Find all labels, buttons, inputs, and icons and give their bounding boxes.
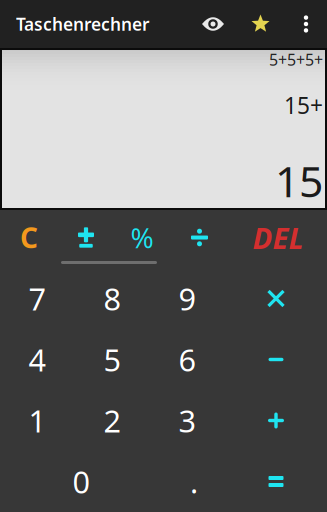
button[interactable]: 3: [150, 390, 225, 451]
staticText: 7: [28, 278, 46, 319]
button[interactable]: Equals: [225, 451, 327, 512]
button[interactable]: More options: [285, 0, 327, 48]
staticText: 5: [103, 339, 121, 380]
staticText: 0: [72, 461, 90, 502]
button[interactable]: Plus: [225, 390, 327, 451]
staticText: 2: [103, 400, 121, 441]
button[interactable]: Plus minus: [58, 210, 114, 265]
button[interactable]: .: [163, 451, 225, 512]
staticText: 6: [178, 339, 196, 380]
button[interactable]: 2: [75, 390, 150, 451]
button[interactable]: Preview: [190, 0, 236, 48]
staticText: .: [190, 461, 198, 502]
button[interactable]: Divide: [170, 210, 229, 265]
staticText: 15: [275, 152, 323, 209]
button[interactable]: Multiply: [225, 268, 327, 329]
staticText: 5+5+5+: [269, 49, 323, 70]
button[interactable]: 7: [0, 268, 75, 329]
staticText: 4: [28, 339, 46, 380]
button[interactable]: C: [0, 210, 58, 265]
button[interactable]: Favorite: [236, 0, 285, 48]
button[interactable]: DEL: [229, 210, 327, 265]
staticText: 1: [28, 400, 46, 441]
button[interactable]: Minus: [225, 329, 327, 390]
button[interactable]: 8: [75, 268, 150, 329]
button[interactable]: %: [114, 210, 170, 265]
staticText: DEL: [252, 218, 303, 257]
staticText: 3: [178, 400, 196, 441]
button[interactable]: 1: [0, 390, 75, 451]
staticText: Taschenrechner: [16, 12, 150, 35]
staticText: %: [130, 219, 153, 256]
staticText: 9: [178, 278, 196, 319]
button[interactable]: 4: [0, 329, 75, 390]
button[interactable]: 9: [150, 268, 225, 329]
button[interactable]: 0: [0, 451, 163, 512]
button[interactable]: 5: [75, 329, 150, 390]
staticText: 8: [103, 278, 121, 319]
button[interactable]: 6: [150, 329, 225, 390]
staticText: C: [20, 219, 38, 256]
staticText: 15+: [284, 90, 323, 120]
